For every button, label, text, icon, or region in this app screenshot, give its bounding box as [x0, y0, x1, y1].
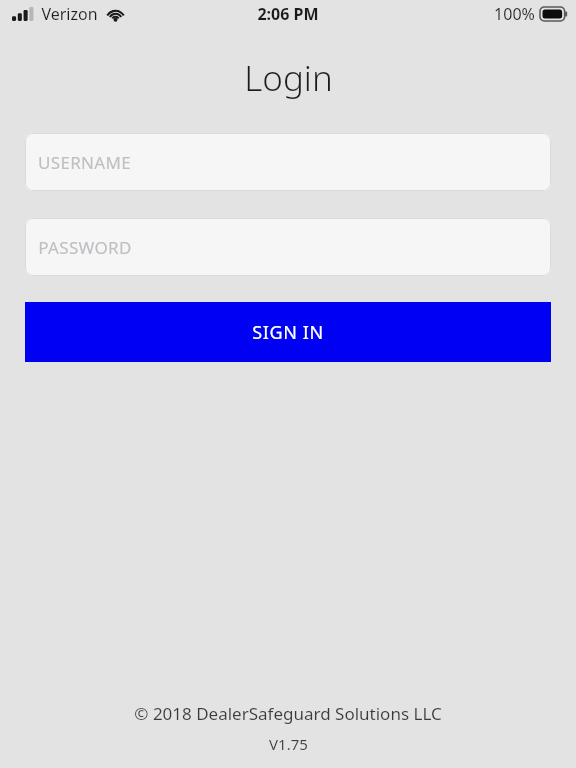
staticText: 100%: [494, 3, 535, 25]
staticText: V1.75: [269, 734, 308, 754]
staticText: 2:06 PM: [257, 3, 319, 25]
staticText: Login: [244, 54, 333, 102]
staticText: © 2018 DealerSafeguard Solutions LLC: [134, 702, 442, 725]
button[interactable]: SIGN IN: [25, 302, 551, 362]
button[interactable]: PASSWORD: [25, 218, 551, 276]
staticText: SIGN IN: [252, 320, 324, 345]
staticText: PASSWORD: [38, 236, 132, 259]
button[interactable]: USERNAME: [25, 133, 551, 191]
staticText: USERNAME: [38, 151, 131, 174]
staticText: Verizon: [41, 3, 98, 25]
